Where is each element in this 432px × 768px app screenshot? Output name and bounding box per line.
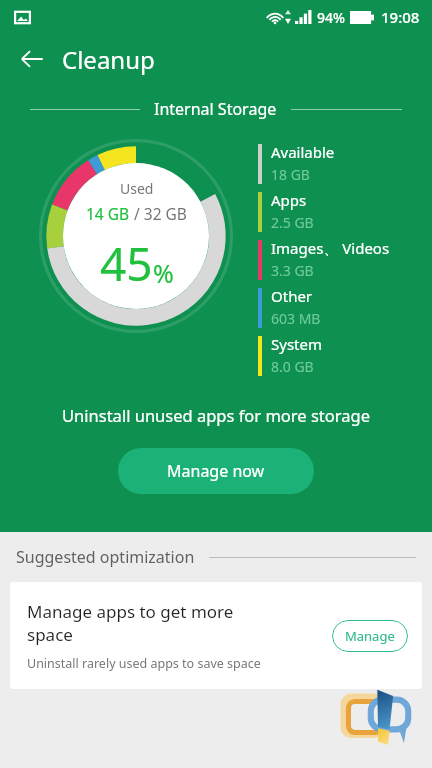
staticText: Cleanup — [62, 43, 155, 76]
staticText: Apps — [271, 190, 307, 210]
button[interactable]: Back — [10, 37, 54, 81]
staticText: Manage now — [167, 460, 265, 482]
staticText: 603 MB — [271, 309, 321, 328]
staticText: Suggested optimization — [16, 546, 195, 568]
staticText: % — [153, 256, 174, 290]
staticText: Uninstall unused apps for more storage — [0, 404, 432, 426]
staticText: 14 GB — [86, 203, 130, 224]
button[interactable]: Manage apps to get more space — [10, 582, 422, 689]
staticText: 8.0 GB — [271, 357, 314, 376]
staticText: Manage apps to get more space — [27, 600, 234, 646]
staticText: Used — [120, 179, 154, 198]
staticText: 94% — [317, 8, 345, 27]
button[interactable]: Manage — [332, 620, 408, 652]
staticText: 19:08 — [381, 7, 420, 27]
staticText: 3.3 GB — [271, 261, 314, 280]
staticText: Available — [271, 142, 335, 162]
staticText: 18 GB — [271, 165, 310, 184]
staticText: System — [271, 334, 322, 354]
staticText: Internal Storage — [154, 98, 277, 120]
button[interactable]: Manage now — [118, 448, 314, 494]
staticText: / 32 GB — [130, 203, 187, 224]
staticText: 2.5 GB — [271, 213, 314, 232]
staticText: 45 — [100, 232, 153, 295]
staticText: Manage — [345, 627, 395, 645]
staticText: Images、 Videos — [271, 238, 390, 258]
staticText: Uninstall rarely used apps to save space — [27, 655, 261, 672]
staticText: Other — [271, 286, 313, 306]
